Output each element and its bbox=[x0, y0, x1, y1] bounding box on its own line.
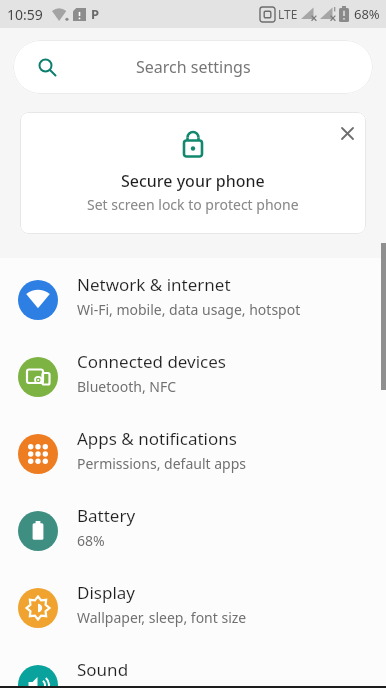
staticText: Volume, vibration, Do Not Disturb bbox=[77, 685, 299, 688]
staticText: Wallpaper, sleep, font size bbox=[77, 608, 247, 627]
staticText: Sound bbox=[77, 658, 129, 681]
staticText: Search settings bbox=[136, 56, 251, 78]
staticText: Connected devices bbox=[77, 350, 227, 373]
button[interactable]: Connected devices bbox=[0, 338, 386, 415]
button[interactable]: Battery bbox=[0, 492, 386, 569]
staticText: Network & internet bbox=[77, 273, 231, 296]
staticText: Display bbox=[77, 581, 135, 604]
staticText: Set screen lock to protect phone bbox=[87, 195, 299, 214]
button[interactable]: Network & internet bbox=[0, 261, 386, 338]
staticText: 10:59 bbox=[7, 5, 43, 24]
button[interactable] bbox=[329, 112, 366, 155]
button[interactable]: Secure your phone bbox=[20, 112, 366, 234]
staticText: Secure your phone bbox=[121, 170, 265, 192]
staticText: Apps & notifications bbox=[77, 427, 237, 450]
button[interactable]: Apps & notifications bbox=[0, 415, 386, 492]
staticText: 68% bbox=[77, 531, 105, 550]
staticText: 68% bbox=[354, 5, 380, 23]
staticText: LTE bbox=[278, 6, 298, 22]
staticText: Wi-Fi, mobile, data usage, hotspot bbox=[77, 300, 301, 319]
button[interactable]: Search settings bbox=[13, 40, 373, 94]
staticText: Battery bbox=[77, 504, 136, 527]
staticText: Bluetooth, NFC bbox=[77, 377, 177, 396]
button[interactable]: Display bbox=[0, 569, 386, 646]
staticText: Permissions, default apps bbox=[77, 454, 247, 473]
button[interactable]: Sound bbox=[0, 646, 386, 688]
staticText: P bbox=[91, 5, 100, 23]
